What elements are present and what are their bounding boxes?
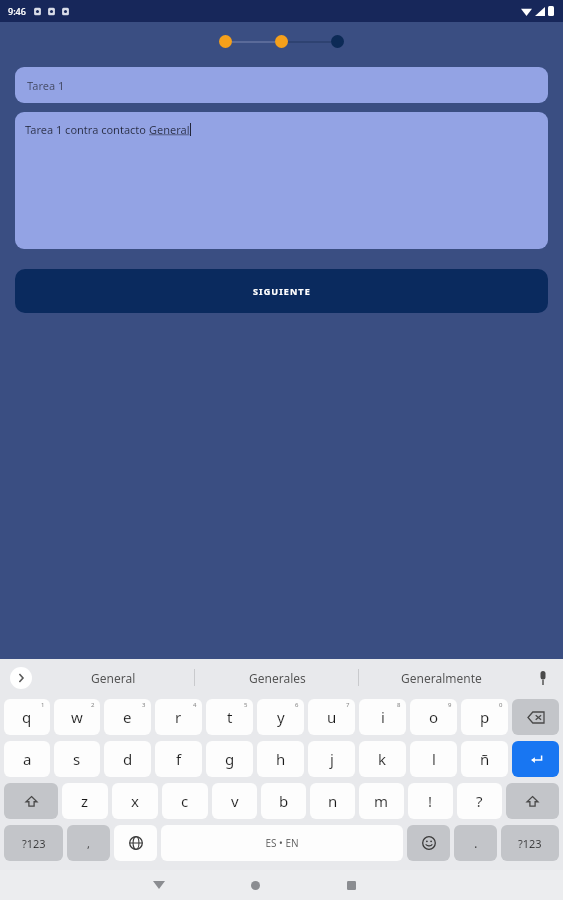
staticText: ?123 [518, 836, 542, 851]
button[interactable]: g [206, 741, 253, 777]
staticText: Generalmente [401, 670, 482, 686]
button[interactable]: k [359, 741, 406, 777]
button[interactable]: ! [408, 783, 453, 819]
staticText: t [227, 707, 233, 727]
button[interactable]: Generales [195, 659, 359, 696]
staticText: q [22, 707, 32, 727]
button[interactable] [219, 35, 232, 48]
button[interactable]: o [410, 699, 457, 735]
button[interactable]: Home [207, 870, 303, 900]
staticText: k [378, 749, 387, 769]
button[interactable]: Recents [303, 870, 399, 900]
staticText: ?123 [22, 836, 46, 851]
button[interactable]: w [54, 699, 100, 735]
staticText: 8 [397, 701, 401, 709]
staticText: General [91, 670, 136, 686]
staticText: j [330, 749, 334, 769]
button[interactable]: ?123 [4, 825, 63, 861]
button[interactable]: x [112, 783, 158, 819]
button[interactable]: t [206, 699, 253, 735]
button[interactable]: r [155, 699, 202, 735]
staticText: e [123, 707, 132, 727]
button[interactable]: ? [457, 783, 502, 819]
staticText: 2 [91, 701, 95, 709]
staticText: m [374, 791, 389, 811]
staticText: c [181, 791, 189, 811]
button[interactable]: a [4, 741, 50, 777]
staticText: 7 [346, 701, 350, 709]
button[interactable]: Emoji [407, 825, 450, 861]
button[interactable]: l [410, 741, 457, 777]
staticText: 3 [142, 701, 146, 709]
button[interactable]: b [261, 783, 306, 819]
button[interactable]: Backspace [512, 699, 559, 735]
button[interactable]: Period [454, 825, 497, 861]
button[interactable]: ñ [461, 741, 508, 777]
staticText: ñ [480, 749, 490, 769]
staticText: a [23, 749, 32, 769]
button[interactable]: d [104, 741, 151, 777]
staticText: g [225, 749, 235, 769]
staticText: i [381, 707, 385, 727]
staticText: ! [428, 791, 433, 811]
button[interactable]: u [308, 699, 355, 735]
button[interactable]: ES • EN [161, 825, 403, 861]
button[interactable] [331, 35, 344, 48]
staticText: d [123, 749, 133, 769]
staticText: x [131, 791, 139, 811]
button[interactable]: Voice input [523, 659, 563, 696]
button[interactable]: SIGUIENTE [15, 269, 548, 313]
staticText: p [480, 707, 490, 727]
button[interactable]: h [257, 741, 304, 777]
staticText: v [231, 791, 239, 811]
staticText: ES • EN [265, 836, 299, 850]
button[interactable]: m [359, 783, 404, 819]
button[interactable]: Comma [67, 825, 110, 861]
staticText: 6 [295, 701, 299, 709]
staticText: f [176, 749, 182, 769]
staticText: z [81, 791, 89, 811]
staticText: s [73, 749, 81, 769]
staticText: n [328, 791, 338, 811]
button[interactable]: Expand suggestions [10, 667, 32, 689]
staticText: , [87, 836, 90, 851]
button[interactable]: Tarea 1 contra contacto [15, 112, 548, 249]
button[interactable]: Tarea 1 [15, 67, 548, 103]
button[interactable]: Generalmente [359, 659, 523, 696]
staticText: 5 [244, 701, 248, 709]
button[interactable]: ?123 [501, 825, 559, 861]
button[interactable] [275, 35, 288, 48]
button[interactable]: q [4, 699, 50, 735]
staticText: Tarea 1 contra contacto [25, 122, 149, 137]
button[interactable]: p [461, 699, 508, 735]
button[interactable]: s [54, 741, 100, 777]
button[interactable]: z [62, 783, 108, 819]
button[interactable]: f [155, 741, 202, 777]
button[interactable]: Back [111, 870, 207, 900]
staticText: w [71, 707, 83, 727]
button[interactable]: i [359, 699, 406, 735]
staticText: 4 [193, 701, 197, 709]
staticText: l [432, 749, 436, 769]
button[interactable]: y [257, 699, 304, 735]
button[interactable]: Shift [506, 783, 559, 819]
staticText: Generales [249, 670, 306, 686]
button[interactable]: Enter [512, 741, 559, 777]
staticText: General [149, 122, 190, 137]
button[interactable]: v [212, 783, 257, 819]
staticText: 0 [499, 701, 503, 709]
staticText: 9 [448, 701, 452, 709]
staticText: SIGUIENTE [253, 285, 311, 297]
button[interactable]: Shift [4, 783, 58, 819]
staticText: r [175, 707, 182, 727]
button[interactable]: General [32, 659, 195, 696]
button[interactable]: Change language [114, 825, 157, 861]
staticText: ? [476, 791, 483, 811]
button[interactable]: e [104, 699, 151, 735]
staticText: Tarea 1 [27, 78, 65, 93]
button[interactable]: c [162, 783, 208, 819]
staticText: b [279, 791, 289, 811]
button[interactable]: n [310, 783, 355, 819]
staticText: . [474, 834, 478, 852]
button[interactable]: j [308, 741, 355, 777]
